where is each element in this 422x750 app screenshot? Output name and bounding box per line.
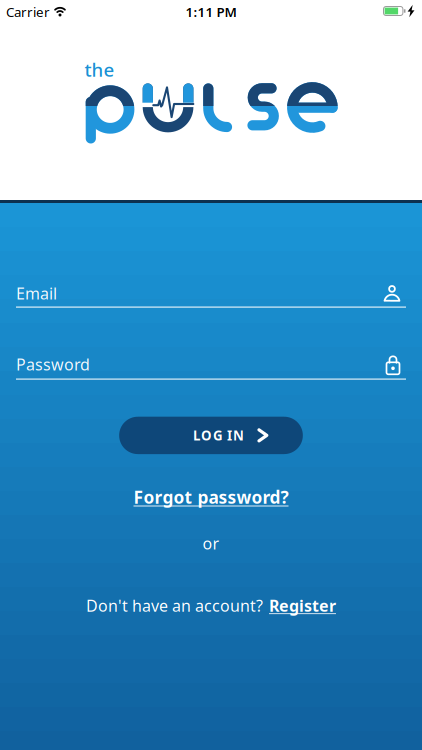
button[interactable]: Register: [269, 595, 336, 616]
button[interactable]: L O G I N: [119, 417, 303, 454]
button[interactable]: Password: [0, 353, 422, 380]
staticText: Email: [16, 283, 57, 304]
staticText: Don't have an account?: [86, 595, 263, 616]
button[interactable]: Forgot password?: [133, 486, 288, 509]
staticText: the: [84, 57, 114, 82]
staticText: Carrier: [6, 3, 50, 21]
staticText: or: [202, 533, 219, 554]
staticText: Password: [16, 354, 90, 375]
staticText: Forgot password?: [133, 486, 288, 509]
staticText: 1:11 PM: [185, 3, 236, 21]
staticText: L O G I N: [193, 426, 244, 444]
staticText: Register: [269, 595, 336, 616]
button[interactable]: Email: [0, 282, 422, 308]
